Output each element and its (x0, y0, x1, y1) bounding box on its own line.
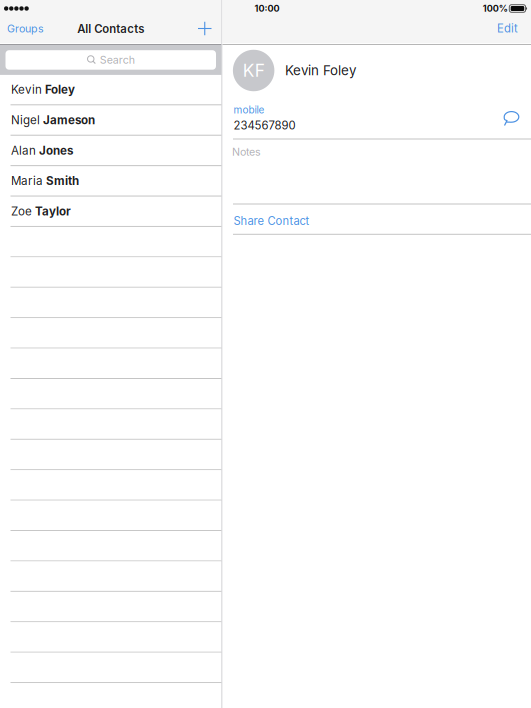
staticText: Share Contact (233, 214, 309, 227)
staticText: Alan Jones (11, 144, 73, 157)
staticText: 100% (483, 3, 508, 14)
button[interactable]: Nigel Jameson (0, 105, 221, 136)
staticText: mobile (233, 104, 264, 116)
button[interactable]: Kevin Foley (0, 75, 221, 105)
staticText: 234567890 (233, 119, 295, 132)
staticText: Maria Smith (11, 174, 79, 188)
button[interactable]: Zoe Taylor (0, 196, 221, 227)
staticText: Kevin Foley (285, 63, 356, 78)
staticText: KF (243, 60, 265, 81)
staticText: 10:00 (254, 3, 279, 14)
staticText: Nigel Jameson (11, 113, 95, 127)
button[interactable]: Edit (497, 19, 531, 41)
staticText: Kevin Foley (11, 83, 75, 96)
staticText: All Contacts (77, 22, 144, 36)
staticText: Groups (7, 22, 44, 35)
button[interactable]: Add Contact (198, 21, 221, 39)
button[interactable]: Maria Smith (0, 166, 221, 196)
button[interactable]: Message (503, 102, 531, 127)
staticText: Zoe Taylor (11, 204, 71, 218)
staticText: Notes (232, 145, 261, 158)
staticText: Edit (497, 22, 518, 35)
staticText: Search (97, 54, 135, 66)
button[interactable]: Share Contact (222, 204, 531, 234)
button[interactable]: Alan Jones (0, 136, 221, 166)
button[interactable]: Groups (0, 19, 44, 41)
